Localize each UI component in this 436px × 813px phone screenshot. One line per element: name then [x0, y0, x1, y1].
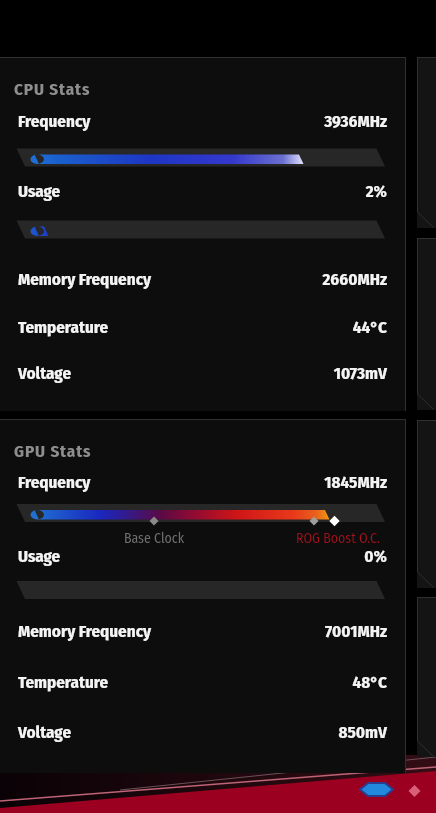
- staticText: 1845MHz: [167, 472, 387, 492]
- staticText: Memory Frequency: [18, 269, 152, 289]
- staticText: Base Clock: [104, 530, 204, 547]
- staticText: ROG Boost O.C.: [288, 530, 388, 547]
- staticText: 3936MHz: [167, 111, 387, 131]
- staticText: Memory Frequency: [18, 621, 152, 641]
- staticText: Temperature: [18, 317, 109, 337]
- button[interactable]: Page 1: [352, 778, 402, 800]
- staticText: 2%: [167, 181, 387, 201]
- staticText: Temperature: [18, 672, 109, 692]
- button[interactable]: [417, 57, 436, 228]
- staticText: Frequency: [18, 472, 91, 492]
- staticText: 0%: [167, 546, 387, 566]
- button[interactable]: CPU Stats: [0, 57, 406, 411]
- staticText: Voltage: [18, 363, 72, 383]
- staticText: 48°C: [167, 672, 387, 692]
- staticText: Voltage: [18, 722, 72, 742]
- staticText: CPU Stats: [14, 79, 91, 99]
- staticText: Usage: [18, 181, 61, 201]
- staticText: 44°C: [167, 317, 387, 337]
- button[interactable]: [417, 238, 436, 410]
- staticText: 7001MHz: [167, 621, 387, 641]
- button[interactable]: GPU Stats: [0, 419, 406, 773]
- staticText: GPU Stats: [14, 441, 92, 461]
- staticText: 850mV: [167, 722, 387, 742]
- button[interactable]: [417, 597, 436, 757]
- staticText: 2660MHz: [167, 269, 387, 289]
- staticText: 1073mV: [167, 363, 387, 383]
- button[interactable]: [417, 420, 436, 588]
- staticText: Usage: [18, 546, 61, 566]
- button[interactable]: Page 2: [404, 781, 426, 801]
- staticText: Frequency: [18, 111, 91, 131]
